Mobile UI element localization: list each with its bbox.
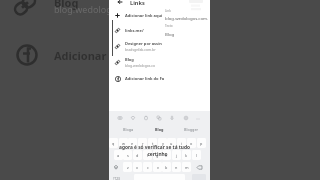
staticText: i — [181, 141, 182, 146]
staticText: c — [147, 165, 149, 170]
staticText: v — [157, 165, 159, 170]
staticText: Links — [130, 0, 145, 6]
staticText: n — [175, 165, 178, 170]
button[interactable]: m — [182, 162, 191, 172]
button[interactable]: Back — [116, 0, 123, 5]
button[interactable]: b — [162, 162, 171, 172]
staticText: y — [162, 141, 164, 146]
button[interactable]: Backspace — [192, 162, 206, 172]
staticText: t — [152, 141, 154, 146]
staticText: q — [112, 141, 115, 146]
staticText: m — [185, 165, 189, 170]
staticText: Link — [165, 9, 171, 13]
button[interactable]: s — [123, 150, 132, 160]
button[interactable]: Keyboard tool 2 — [129, 114, 137, 122]
button[interactable]: Shift — [109, 162, 123, 172]
button[interactable]: i — [177, 138, 186, 148]
button[interactable]: l — [192, 150, 201, 160]
button[interactable]: w — [119, 138, 128, 148]
button[interactable]: k — [182, 150, 191, 160]
button[interactable]: j — [172, 150, 181, 160]
staticText: bssdsgnfab.com.br — [125, 47, 156, 52]
staticText: certinho — [147, 151, 168, 158]
staticText: j — [176, 153, 177, 158]
button[interactable]: p — [197, 138, 206, 148]
staticText: Adicionar link do Fa — [125, 76, 165, 81]
button[interactable]: Bloga — [114, 125, 142, 133]
button[interactable]: x — [133, 162, 142, 172]
button[interactable]: r — [138, 138, 147, 148]
button[interactable]: Numbers — [109, 174, 123, 180]
staticText: Blog — [165, 31, 175, 37]
button[interactable]: Keyboard tool 6 — [182, 114, 190, 122]
staticText: blog.wedologos.com.br — [165, 15, 209, 21]
staticText: a — [117, 153, 120, 158]
staticText: Bloga — [123, 127, 134, 132]
button[interactable]: Keyboard tool 3 — [142, 114, 150, 122]
staticText: d — [136, 153, 139, 158]
staticText: Adicionar — [54, 48, 107, 63]
button[interactable]: Designer por assin — [113, 39, 165, 54]
staticText: s — [127, 153, 129, 158]
staticText: p — [200, 141, 203, 146]
staticText: o — [190, 141, 193, 146]
button[interactable]: a — [114, 150, 123, 160]
staticText: b — [165, 165, 168, 170]
button[interactable]: g — [153, 150, 162, 160]
button[interactable]: u — [167, 138, 176, 148]
staticText: u — [170, 141, 173, 146]
staticText: blog.wedologos.co — [125, 63, 155, 68]
button[interactable]: d — [133, 150, 142, 160]
staticText: k — [185, 153, 188, 158]
button[interactable]: Keyboard tool 5 — [168, 114, 176, 122]
staticText: Blog — [155, 127, 164, 132]
button[interactable]: y — [158, 138, 167, 148]
button[interactable]: links.me/wedologos — [113, 23, 165, 38]
staticText: Blog — [125, 57, 134, 62]
staticText: h — [165, 153, 168, 158]
button[interactable]: Blog — [147, 125, 172, 133]
staticText: agora é só verificar se tá tudo — [119, 144, 190, 151]
button[interactable]: f — [143, 150, 152, 160]
staticText: x — [136, 165, 139, 170]
staticText: blog.wedologos.com — [54, 3, 143, 15]
staticText: Designer por assin — [125, 41, 162, 46]
button[interactable]: n — [172, 162, 181, 172]
staticText: f — [147, 153, 149, 158]
staticText: links.me/wedologos — [125, 28, 165, 33]
staticText: Blogger — [184, 127, 199, 132]
button[interactable]: e — [128, 138, 137, 148]
staticText: ?123 — [113, 177, 120, 180]
button[interactable]: Adicionar link aqui — [113, 8, 165, 23]
button[interactable]: z — [123, 162, 132, 172]
staticText: z — [127, 165, 129, 170]
staticText: g — [156, 153, 159, 158]
button[interactable]: Keyboard tool 1 — [116, 114, 124, 122]
button[interactable]: Keyboard tool 4 — [155, 114, 163, 122]
button[interactable]: Blogger — [177, 125, 205, 133]
button[interactable]: Adicionar link do Fa — [113, 71, 165, 86]
button[interactable]: Blog — [113, 55, 165, 70]
staticText: r — [142, 141, 144, 146]
staticText: l — [196, 153, 197, 158]
staticText: w — [122, 141, 125, 146]
staticText: Blog — [54, 0, 79, 10]
button[interactable]: v — [153, 162, 162, 172]
button[interactable]: t — [148, 138, 157, 148]
staticText: Adicionar link aqui — [125, 13, 163, 18]
staticText: e — [131, 141, 134, 146]
button[interactable]: q — [109, 138, 118, 148]
button[interactable]: o — [187, 138, 196, 148]
button[interactable]: h — [162, 150, 171, 160]
button[interactable]: c — [143, 162, 152, 172]
staticText: Texto — [165, 24, 173, 28]
